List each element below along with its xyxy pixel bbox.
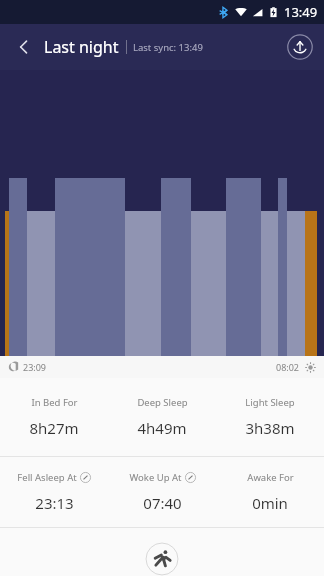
button[interactable]: Share	[286, 33, 314, 61]
button[interactable]: Woke Up At	[108, 471, 216, 513]
staticText: Deep Sleep	[137, 396, 188, 409]
staticText: Last night	[44, 36, 119, 58]
button[interactable]: In Bed For	[0, 396, 108, 438]
staticText: 08:02	[276, 361, 300, 373]
button[interactable]: Awake For	[216, 471, 324, 513]
button[interactable]: Light Sleep	[216, 396, 324, 438]
staticText: 8h27m	[29, 418, 79, 438]
button[interactable]: Fell Asleep At	[0, 471, 108, 513]
button[interactable]: Deep Sleep	[108, 396, 216, 438]
staticText: Awake For	[247, 471, 294, 484]
staticText: Woke Up At	[129, 471, 182, 484]
button[interactable]: Activity	[145, 542, 179, 576]
staticText: In Bed For	[31, 396, 78, 409]
staticText: 0min	[252, 493, 288, 513]
button[interactable]: Back	[10, 33, 38, 61]
staticText: Light Sleep	[245, 396, 295, 409]
staticText: 13:49	[284, 3, 318, 21]
staticText: 07:40	[143, 493, 182, 513]
staticText: 3h38m	[245, 418, 295, 438]
staticText: 23:09	[23, 361, 47, 373]
staticText: 23:13	[35, 493, 74, 513]
staticText: Last sync: 13:49	[133, 41, 203, 54]
staticText: Fell Asleep At	[17, 471, 77, 484]
staticText: 4h49m	[137, 418, 187, 438]
